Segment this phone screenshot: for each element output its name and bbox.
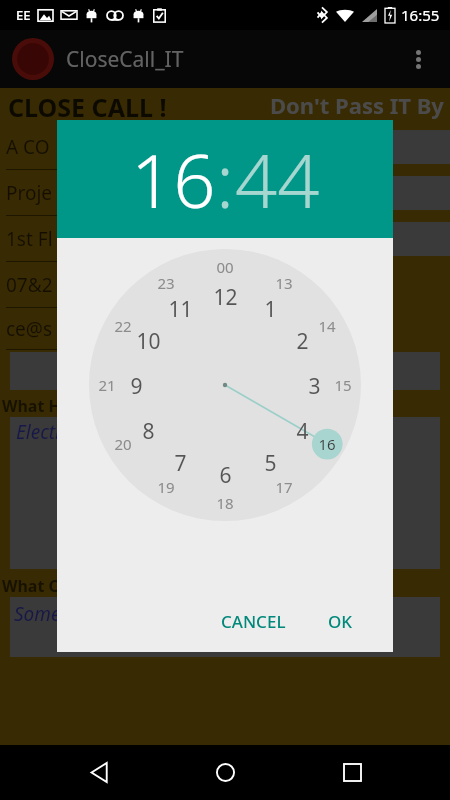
staticText: 13 xyxy=(275,273,293,293)
staticText: 20 xyxy=(114,434,132,454)
staticText: ous xyxy=(336,226,368,252)
staticText: 16:55 xyxy=(401,5,440,25)
staticText: Electrocution xyxy=(16,419,126,445)
button[interactable]: More options xyxy=(398,39,438,79)
staticText: 1 xyxy=(264,295,277,321)
staticText: 8 xyxy=(142,417,155,443)
staticText: ce@s xyxy=(6,316,53,342)
staticText: Proje xyxy=(6,180,53,206)
staticText: 18 xyxy=(216,493,234,513)
staticText: 16 xyxy=(318,434,336,454)
staticText: 3 xyxy=(308,372,321,398)
staticText: 9 xyxy=(130,372,143,398)
staticText: 2 xyxy=(296,327,309,353)
button[interactable]: Home xyxy=(197,745,253,800)
staticText: CloseCall_IT xyxy=(66,45,184,74)
staticText: A CO xyxy=(6,134,50,160)
staticText: 17 xyxy=(275,477,293,497)
staticText: 11 xyxy=(168,295,193,321)
staticText: EE xyxy=(16,6,31,24)
staticText: 10 xyxy=(136,327,161,353)
staticText: 14 xyxy=(318,316,336,336)
staticText: 19 xyxy=(157,477,175,497)
staticText: : xyxy=(216,129,235,230)
staticText: 22 xyxy=(114,316,132,336)
button[interactable]: Recents xyxy=(324,745,380,800)
staticText: 7 xyxy=(174,449,187,475)
staticText: Some one could get electrocuted and / or xyxy=(14,601,361,627)
staticText: 4 xyxy=(296,417,309,443)
staticText: 5 xyxy=(264,449,277,475)
button[interactable]: CANCEL xyxy=(211,602,296,641)
staticText: CLOSE CALL ! xyxy=(8,90,167,124)
staticText: 12 xyxy=(213,283,238,309)
button[interactable]: OK xyxy=(318,602,363,641)
staticText: 07&2 xyxy=(6,272,53,298)
button[interactable]: Back xyxy=(71,745,127,800)
staticText: OK xyxy=(328,610,353,633)
staticText: 15 xyxy=(334,375,352,395)
staticText: 1st Fl xyxy=(6,226,53,252)
staticText: Don't Pass IT By xyxy=(270,90,444,120)
staticText: CANCEL xyxy=(221,610,286,633)
staticText: What Could Have Happened ? xyxy=(2,575,237,597)
staticText: 21 xyxy=(98,375,116,395)
staticText: 16 xyxy=(131,129,216,230)
staticText: What Happened ? xyxy=(2,395,143,417)
staticText: 00 xyxy=(216,257,234,277)
staticText: 44 xyxy=(235,129,320,230)
button[interactable]: 16 xyxy=(57,120,393,238)
staticText: 23 xyxy=(157,273,175,293)
staticText: 6 xyxy=(219,461,232,487)
